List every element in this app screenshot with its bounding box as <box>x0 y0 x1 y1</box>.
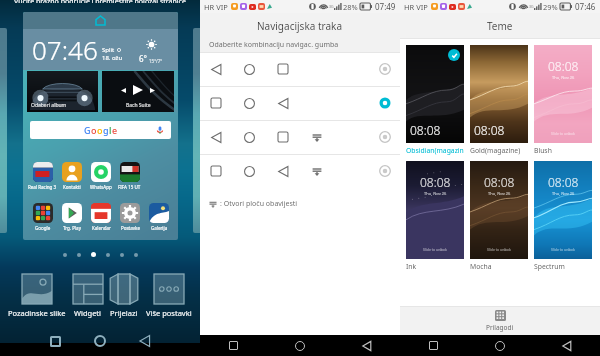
button[interactable] <box>200 86 400 120</box>
staticText: 08:08 <box>474 122 505 138</box>
staticText: Thu, Nov 26 <box>552 191 575 196</box>
button[interactable]: Galerija <box>149 203 169 231</box>
staticText: Trg. Play <box>63 225 81 231</box>
staticText: Real Racing 3 <box>28 184 57 190</box>
staticText: Kalendar <box>92 225 111 231</box>
button[interactable]: Recents <box>400 335 466 356</box>
staticText: Kontakti <box>63 184 81 190</box>
staticText: Bach Suite <box>126 102 151 109</box>
staticText: Thu, Nov 26 <box>424 191 447 196</box>
staticText: Spectrum <box>534 262 565 271</box>
staticText: 29% <box>543 2 558 12</box>
button[interactable]: Home <box>77 332 122 350</box>
staticText: Blush <box>534 146 552 155</box>
button[interactable]: Real Racing 3 <box>28 162 57 190</box>
staticText: 08:08 <box>548 58 579 74</box>
button[interactable]: Kontakti <box>62 162 82 190</box>
button[interactable]: G <box>30 121 171 139</box>
staticText: 08:08 <box>410 122 441 138</box>
staticText: Vucite prazno podrucje i premjestite pol… <box>0 0 200 3</box>
button[interactable]: 08:08 <box>470 45 528 143</box>
button[interactable]: Više postavki <box>145 274 193 318</box>
staticText: Thu, Nov 26 <box>552 75 575 80</box>
staticText: Pozadinske slike <box>8 308 66 318</box>
button[interactable]: Prijelazi <box>108 274 140 318</box>
staticText: 07:49 <box>375 1 396 12</box>
button[interactable]: FIFA 15 UT <box>118 162 141 190</box>
staticText: 08:08 <box>420 174 451 190</box>
button[interactable]: Recents <box>33 332 77 350</box>
staticText: FIFA 15 UT <box>118 184 141 190</box>
button[interactable]: Trg. Play <box>62 203 82 231</box>
staticText: 18. ožu <box>102 54 123 62</box>
staticText: o <box>97 124 103 136</box>
button[interactable]: 08:08 <box>406 45 464 143</box>
staticText: 07:46 <box>32 32 98 67</box>
button[interactable]: Home <box>466 335 533 356</box>
staticText: l <box>109 124 112 136</box>
staticText: 6° <box>139 53 147 64</box>
staticText: Ink <box>406 262 417 271</box>
staticText: Mocha <box>470 262 492 271</box>
staticText: Slide to unlock <box>551 247 575 252</box>
staticText: Prilagodi <box>486 323 514 332</box>
button[interactable] <box>200 154 400 188</box>
staticText: 07:46 <box>575 1 596 12</box>
button[interactable]: Back <box>333 335 400 356</box>
staticText: e <box>112 124 118 136</box>
staticText: Odaberi album <box>31 102 67 109</box>
staticText: Google <box>35 225 51 231</box>
staticText: Obsidian(magazin... <box>406 146 464 155</box>
staticText: 3G <box>329 4 334 9</box>
staticText: 08:08 <box>484 174 515 190</box>
button[interactable]: Prilagodi <box>400 307 600 335</box>
button[interactable]: Recents <box>200 335 266 356</box>
button[interactable]: Google <box>33 203 53 231</box>
button[interactable]: 08:08 <box>406 161 464 259</box>
staticText: Thu, Nov 26 <box>488 191 511 196</box>
staticText: g <box>103 124 109 136</box>
staticText: Više postavki <box>146 308 192 318</box>
staticText: Gold(magazine) <box>470 146 521 155</box>
staticText: 08:08 <box>548 174 579 190</box>
staticText: o <box>91 124 97 136</box>
button[interactable]: 07:46 <box>23 12 178 240</box>
button[interactable]: Pozadinske slike <box>7 274 67 318</box>
button[interactable] <box>200 120 400 154</box>
button[interactable]: Back <box>533 335 600 356</box>
button[interactable]: Postavke <box>120 203 140 231</box>
button[interactable] <box>200 52 400 86</box>
staticText: Widgeti <box>74 308 102 318</box>
staticText: Navigacijska traka <box>257 19 343 33</box>
button[interactable]: Kalendar <box>91 203 111 231</box>
staticText: Prijelazi <box>110 308 138 318</box>
staticText: Slide to unlock <box>487 247 511 252</box>
staticText: Slide to unlock <box>551 131 575 136</box>
button[interactable]: Odaberi album <box>27 71 98 112</box>
staticText: WhatsApp <box>90 184 112 190</box>
staticText: HR VIP <box>404 2 428 12</box>
staticText: Galerija <box>151 225 168 231</box>
staticText: 15°/7° <box>149 58 163 64</box>
button[interactable]: WhatsApp <box>90 162 112 190</box>
button[interactable]: Back <box>122 332 167 350</box>
staticText: Split <box>102 46 115 54</box>
staticText: HR VIP <box>204 2 228 12</box>
staticText: 3G <box>529 4 534 9</box>
button[interactable]: 08:08 <box>534 45 592 143</box>
staticText: : Otvori ploču obavijesti <box>220 199 298 209</box>
staticText: Slide to unlock <box>423 247 447 252</box>
staticText: 28% <box>343 2 358 12</box>
button[interactable]: Bach Suite <box>102 71 174 112</box>
staticText: Teme <box>487 19 513 33</box>
staticText: Postavke <box>121 225 140 231</box>
staticText: Odaberite kombinaciju navigac. gumba <box>209 40 339 50</box>
staticText: G <box>84 124 91 136</box>
button[interactable]: Widgeti <box>72 274 104 318</box>
button[interactable]: 08:08 <box>470 161 528 259</box>
button[interactable]: 08:08 <box>534 161 592 259</box>
button[interactable]: Home <box>266 335 333 356</box>
